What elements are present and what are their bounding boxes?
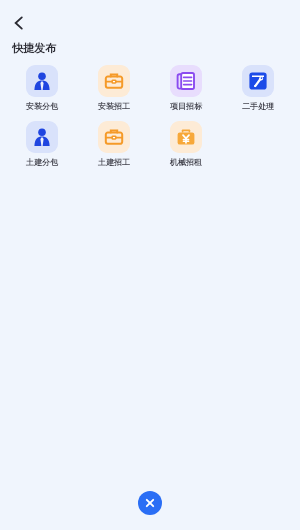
staticText: 快捷发布 <box>12 41 56 55</box>
staticText: 机械招租 <box>170 157 202 167</box>
button[interactable]: 安装招工 <box>83 63 145 113</box>
button[interactable]: 土建分包 <box>11 119 73 169</box>
button[interactable]: 安装分包 <box>11 63 73 113</box>
button[interactable]: Back <box>4 8 34 38</box>
staticText: 土建招工 <box>98 157 130 167</box>
button[interactable]: 二手处理 <box>227 63 289 113</box>
staticText: 安装分包 <box>26 101 58 111</box>
staticText: 二手处理 <box>242 101 274 111</box>
staticText: 项目招标 <box>170 101 202 111</box>
button[interactable]: Close <box>138 491 162 515</box>
button[interactable]: 项目招标 <box>155 63 217 113</box>
button[interactable]: 土建招工 <box>83 119 145 169</box>
staticText: 安装招工 <box>98 101 130 111</box>
staticText: 土建分包 <box>26 157 58 167</box>
button[interactable]: 机械招租 <box>155 119 217 169</box>
